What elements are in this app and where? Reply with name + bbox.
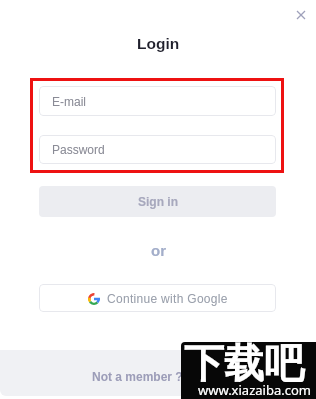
- staticText: www.xiazaiba.com: [198, 381, 311, 399]
- button[interactable]: Sign in: [39, 186, 276, 217]
- staticText: 下载吧: [184, 342, 304, 388]
- staticText: Sign in: [138, 195, 178, 208]
- button[interactable]: Continue with Google: [39, 284, 276, 312]
- button[interactable]: [296, 10, 306, 20]
- staticText: E-mail: [52, 95, 87, 108]
- staticText: Login: [137, 35, 180, 52]
- staticText: Password: [52, 143, 105, 156]
- button[interactable]: E-mail: [39, 86, 276, 116]
- button[interactable]: Password: [39, 135, 276, 164]
- button[interactable]: Not a member ? Sign up: [92, 370, 231, 383]
- staticText: Continue with Google: [107, 292, 228, 305]
- staticText: or: [151, 242, 166, 259]
